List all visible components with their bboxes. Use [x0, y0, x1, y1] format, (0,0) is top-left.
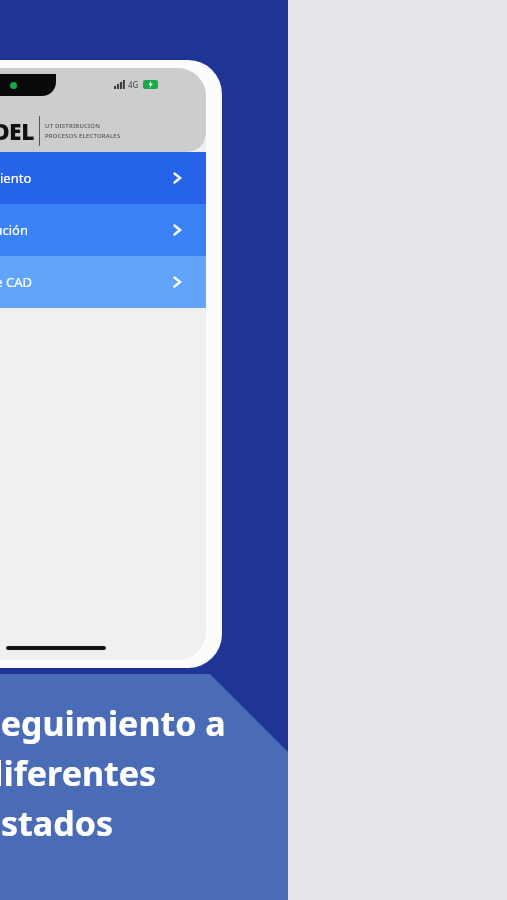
staticText: PROCESOS ELECTORALES — [45, 132, 121, 140]
staticText: Seguimiento a — [0, 700, 226, 746]
staticText: Seguimiento — [0, 169, 32, 187]
other: Abrir — [170, 171, 184, 185]
other: Abrir — [170, 223, 184, 237]
button[interactable]: Reporte CAD — [0, 256, 206, 308]
staticText: Estados — [0, 800, 114, 846]
staticText: DISPROEL — [0, 115, 34, 146]
staticText: diferentes — [0, 750, 157, 796]
button[interactable]: Seguimiento — [0, 152, 206, 204]
staticText: 4G — [128, 79, 139, 90]
other: Abrir — [170, 275, 184, 289]
button[interactable]: Distribución — [0, 204, 206, 256]
staticText: Distribución — [0, 221, 29, 239]
staticText: Reporte CAD — [0, 273, 33, 291]
staticText: UT DISTRIBUCIÓN — [45, 122, 101, 130]
